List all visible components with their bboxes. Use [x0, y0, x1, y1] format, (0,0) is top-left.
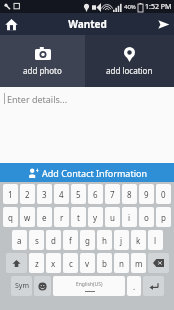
button[interactable]: j	[114, 230, 129, 250]
staticText: 3	[42, 189, 47, 200]
staticText: 0	[161, 189, 166, 200]
button[interactable]: i	[122, 207, 137, 227]
button[interactable]: 8	[122, 184, 137, 204]
staticText: j	[120, 235, 123, 246]
staticText: 9	[144, 189, 149, 200]
button[interactable]: 6	[88, 184, 103, 204]
staticText: 1	[8, 189, 13, 200]
button[interactable]: add location	[85, 35, 174, 87]
button[interactable]: t	[71, 207, 86, 227]
button[interactable]: add photo	[0, 35, 85, 87]
staticText: d	[51, 235, 56, 246]
staticText: y	[93, 212, 98, 223]
button[interactable]: Backspace	[148, 253, 169, 273]
staticText: m	[135, 258, 143, 269]
staticText: b	[102, 258, 107, 269]
staticText: r	[60, 212, 64, 223]
staticText: 5	[76, 189, 81, 200]
button[interactable]: w	[20, 207, 35, 227]
button[interactable]: o	[139, 207, 154, 227]
staticText: p	[161, 212, 166, 223]
button[interactable]: 9	[139, 184, 154, 204]
button[interactable]: 3	[37, 184, 52, 204]
button[interactable]: Space	[53, 276, 125, 296]
button[interactable]: 7	[105, 184, 120, 204]
button[interactable]: Sym	[11, 276, 32, 296]
button[interactable]: 2	[20, 184, 35, 204]
button[interactable]: Add Contact Information	[0, 163, 174, 182]
button[interactable]: .	[127, 276, 141, 296]
staticText: s	[35, 235, 39, 246]
staticText: v	[85, 258, 90, 269]
staticText: add photo	[23, 65, 62, 76]
button[interactable]: u	[105, 207, 120, 227]
staticText: e	[42, 212, 47, 223]
button[interactable]: d	[46, 230, 61, 250]
button[interactable]: l	[148, 230, 163, 250]
staticText: 6	[93, 189, 98, 200]
staticText: z	[35, 258, 39, 269]
button[interactable]: q	[3, 207, 18, 227]
staticText: add location	[106, 65, 153, 76]
button[interactable]: e	[37, 207, 52, 227]
button[interactable]: Emoji	[34, 276, 51, 296]
staticText: Sym	[15, 281, 29, 291]
staticText: 40%	[124, 3, 136, 11]
button[interactable]: Enter details...	[0, 87, 174, 163]
button[interactable]: v	[80, 253, 95, 273]
button[interactable]: 5	[71, 184, 86, 204]
button[interactable]: x	[46, 253, 61, 273]
staticText: l	[154, 235, 157, 246]
staticText: t	[77, 212, 80, 223]
button[interactable]: Home	[0, 13, 22, 35]
staticText: k	[136, 235, 141, 246]
staticText: .	[133, 281, 136, 292]
button[interactable]: y	[88, 207, 103, 227]
staticText: Add Contact Information	[42, 167, 147, 179]
staticText: u	[110, 212, 115, 223]
button[interactable]: z	[29, 253, 44, 273]
staticText: h	[102, 235, 107, 246]
staticText: w	[24, 212, 31, 223]
button[interactable]: 0	[156, 184, 171, 204]
staticText: f	[69, 235, 72, 246]
staticText: Wanted	[68, 17, 107, 31]
staticText: o	[144, 212, 149, 223]
button[interactable]: s	[29, 230, 44, 250]
button[interactable]: g	[80, 230, 95, 250]
button[interactable]: c	[63, 253, 78, 273]
button[interactable]: r	[54, 207, 69, 227]
staticText: Enter details...	[7, 93, 68, 105]
button[interactable]: Send	[152, 13, 174, 35]
button[interactable]: k	[131, 230, 146, 250]
staticText: n	[119, 258, 124, 269]
button[interactable]: Shift	[6, 253, 27, 273]
button[interactable]: m	[131, 253, 146, 273]
staticText: q	[8, 212, 13, 223]
staticText: 4	[59, 189, 64, 200]
button[interactable]: p	[156, 207, 171, 227]
button[interactable]: h	[97, 230, 112, 250]
button[interactable]: n	[114, 253, 129, 273]
staticText: 1:52 PM	[145, 2, 172, 12]
staticText: i	[128, 212, 131, 223]
button[interactable]: 4	[54, 184, 69, 204]
staticText: x	[51, 258, 56, 269]
staticText: a	[17, 235, 22, 246]
button[interactable]: a	[12, 230, 27, 250]
staticText: 7	[110, 189, 115, 200]
button[interactable]: 1	[3, 184, 18, 204]
staticText: c	[69, 258, 73, 269]
button[interactable]: Enter	[143, 276, 164, 296]
staticText: g	[85, 235, 90, 246]
staticText: 8	[127, 189, 132, 200]
staticText: English(US)	[76, 281, 103, 288]
button[interactable]: f	[63, 230, 78, 250]
staticText: 2	[25, 189, 30, 200]
button[interactable]: b	[97, 253, 112, 273]
